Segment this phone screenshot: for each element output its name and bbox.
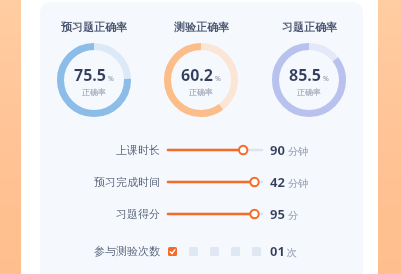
staticText: 参与测验次数 xyxy=(94,244,160,258)
staticText: 分 xyxy=(288,209,298,222)
staticText: 90 xyxy=(270,141,285,159)
staticText: 42 xyxy=(270,173,285,191)
staticText: 95 xyxy=(270,205,285,223)
staticText: 60.2 xyxy=(181,64,213,86)
button[interactable]: 参与测验次数 xyxy=(40,240,363,262)
staticText: 正确率 xyxy=(82,87,106,97)
staticText: 75.5 xyxy=(74,64,106,86)
button[interactable]: 上课时长 xyxy=(40,139,363,161)
button[interactable]: 85.5 xyxy=(272,43,346,117)
button[interactable]: 预习完成时间 xyxy=(40,171,363,193)
button[interactable]: 习题得分 xyxy=(40,203,363,225)
button[interactable]: Test 1 xyxy=(168,247,177,256)
staticText: 习题正确率 xyxy=(282,20,337,34)
staticText: 上课时长 xyxy=(116,143,160,157)
staticText: 测验正确率 xyxy=(174,20,229,34)
button[interactable]: 60.2 xyxy=(164,43,238,117)
staticText: 预习完成时间 xyxy=(94,175,160,189)
staticText: 正确率 xyxy=(297,87,321,97)
staticText: 次 xyxy=(287,246,297,259)
staticText: % xyxy=(323,74,329,84)
staticText: 预习题正确率 xyxy=(61,20,127,34)
staticText: 分钟 xyxy=(288,145,308,158)
staticText: 分钟 xyxy=(288,177,308,190)
staticText: 85.5 xyxy=(289,64,321,86)
button[interactable]: 75.5 xyxy=(57,43,131,117)
staticText: 正确率 xyxy=(189,87,213,97)
staticText: % xyxy=(215,74,221,84)
staticText: 习题得分 xyxy=(116,207,160,221)
staticText: 01 xyxy=(270,242,285,260)
staticText: % xyxy=(108,74,114,84)
